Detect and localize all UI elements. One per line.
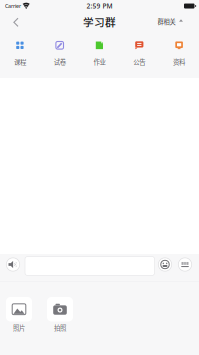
staticText: 公告: [133, 57, 145, 66]
staticText: 照片: [13, 323, 25, 332]
staticText: 群相关: [157, 17, 175, 26]
button[interactable]: Back: [0, 14, 26, 29]
button[interactable]: Voice message: [6, 257, 20, 271]
staticText: 试卷: [54, 57, 66, 66]
staticText: Carrier: [5, 2, 21, 10]
button[interactable]: Emoji: [158, 257, 172, 271]
staticText: 2:59 PM: [86, 2, 112, 10]
staticText: 学习群: [83, 14, 116, 29]
button[interactable]: Keyboard: [178, 257, 192, 271]
button[interactable]: 群相关: [149, 13, 199, 30]
button[interactable]: 作业: [80, 31, 119, 78]
button[interactable]: 公告: [119, 31, 159, 78]
button[interactable]: 课程: [0, 31, 40, 78]
staticText: 课程: [14, 57, 26, 66]
staticText: 资料: [173, 57, 185, 66]
staticText: 拍照: [54, 323, 66, 332]
button[interactable]: Message field: [25, 253, 154, 275]
button[interactable]: 资料: [159, 31, 199, 78]
button[interactable]: 拍照: [47, 297, 73, 332]
button[interactable]: 照片: [6, 297, 32, 332]
staticText: 作业: [93, 57, 105, 66]
button[interactable]: 试卷: [40, 31, 80, 78]
